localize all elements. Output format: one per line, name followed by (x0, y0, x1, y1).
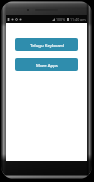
button[interactable]: Telugu Keyboard (15, 38, 78, 51)
button[interactable]: More Apps (15, 58, 78, 71)
staticText: More Apps (36, 62, 58, 68)
staticText: Telugu Keyboard (30, 42, 64, 48)
staticText: 100% (56, 17, 66, 22)
staticText: 11:40 am (70, 17, 86, 22)
